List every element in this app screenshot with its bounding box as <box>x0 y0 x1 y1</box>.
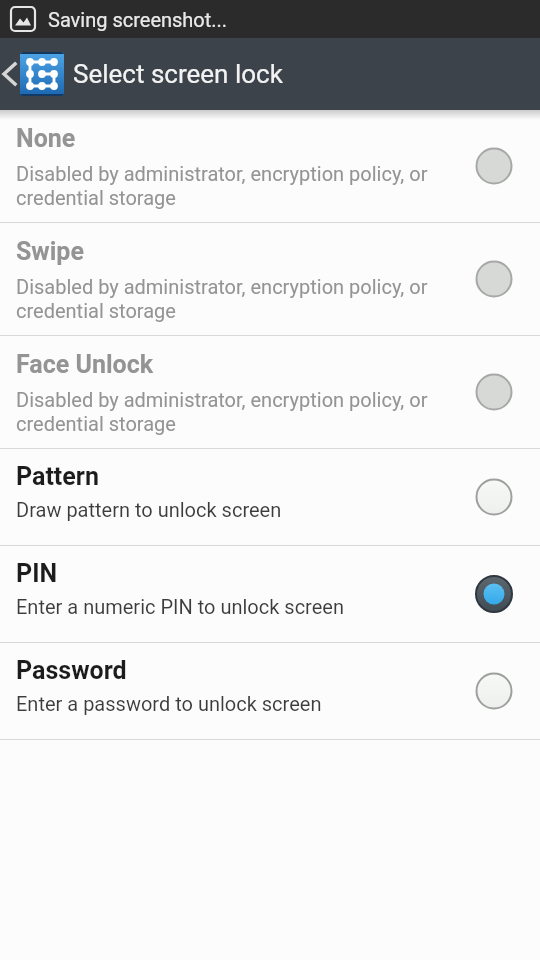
button[interactable]: Password <box>0 643 540 739</box>
staticText: Disabled by administrator, encryption po… <box>16 275 470 323</box>
staticText: Face Unlock <box>16 350 154 379</box>
staticText: Draw pattern to unlock screen <box>16 498 470 521</box>
button[interactable]: PIN <box>0 546 540 642</box>
staticText: Disabled by administrator, encryption po… <box>16 388 470 436</box>
staticText: Enter a password to unlock screen <box>16 692 470 715</box>
button[interactable]: Face Unlock <box>0 336 540 448</box>
staticText: Password <box>16 656 127 685</box>
button[interactable]: Swipe <box>0 223 540 335</box>
button[interactable]: None <box>0 110 540 222</box>
button[interactable]: Pattern <box>0 449 540 545</box>
button[interactable]: Select screen lock <box>0 38 540 110</box>
staticText: PIN <box>16 559 58 588</box>
staticText: Swipe <box>16 237 84 266</box>
staticText: Select screen lock <box>73 59 283 89</box>
staticText: Saving screenshot... <box>48 8 228 31</box>
staticText: None <box>16 124 76 153</box>
staticText: Enter a numeric PIN to unlock screen <box>16 595 470 618</box>
staticText: Disabled by administrator, encryption po… <box>16 162 470 210</box>
staticText: Pattern <box>16 462 99 491</box>
